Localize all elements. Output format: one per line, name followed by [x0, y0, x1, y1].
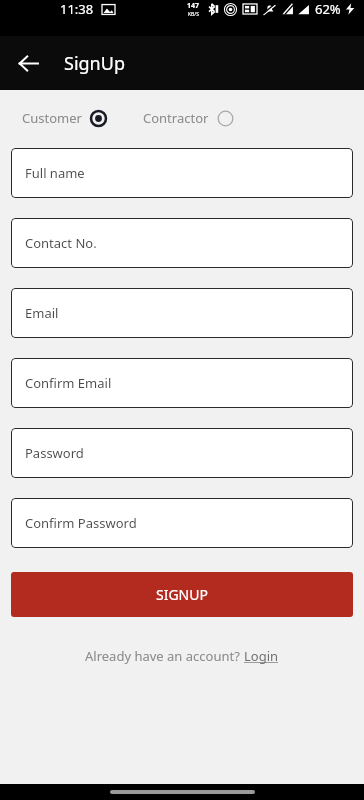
staticText: Confirm Password: [25, 514, 137, 532]
button[interactable]: Contractor: [143, 109, 234, 127]
staticText: Already have an account?: [85, 647, 244, 665]
staticText: Email: [25, 304, 59, 322]
button[interactable]: Confirm Email: [11, 358, 353, 408]
staticText: Login: [244, 647, 279, 665]
staticText: SignUp: [64, 51, 125, 76]
staticText: Confirm Email: [25, 374, 112, 392]
button[interactable]: Confirm Password: [11, 498, 353, 548]
staticText: KB/S: [188, 11, 199, 18]
staticText: Contractor: [143, 109, 209, 127]
button[interactable]: Full name: [11, 148, 353, 198]
button[interactable]: Back: [8, 43, 48, 83]
button[interactable]: Email: [11, 288, 353, 338]
staticText: Full name: [25, 164, 85, 182]
staticText: Password: [25, 444, 84, 462]
staticText: Contact No.: [25, 234, 97, 252]
staticText: 62%: [315, 0, 341, 18]
button[interactable]: Contact No.: [11, 218, 353, 268]
button[interactable]: Customer: [22, 109, 107, 127]
staticText: Customer: [22, 109, 82, 127]
button[interactable]: Login: [244, 647, 279, 665]
staticText: SIGNUP: [156, 585, 208, 604]
button[interactable]: SIGNUP: [11, 572, 353, 617]
staticText: 147: [187, 1, 200, 11]
button[interactable]: Password: [11, 428, 353, 478]
staticText: 11:38: [60, 0, 94, 18]
